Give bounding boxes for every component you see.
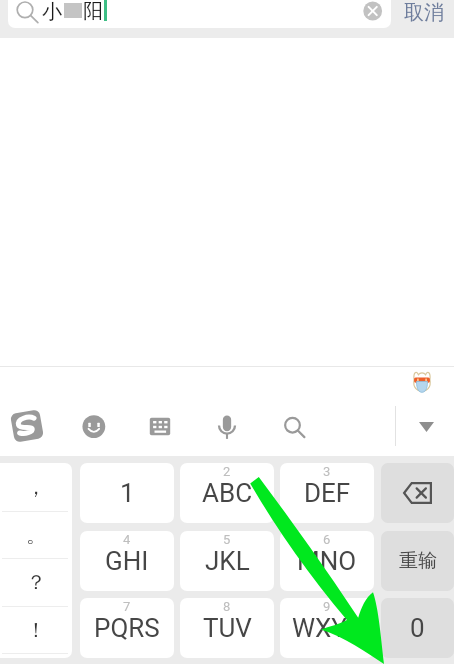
button[interactable]: WXYZ	[280, 598, 374, 658]
staticText: GHI	[105, 546, 149, 576]
staticText: ？	[26, 570, 46, 595]
staticText: 4	[123, 532, 131, 547]
staticText: TUV	[203, 613, 252, 643]
staticText: ，	[26, 475, 46, 500]
staticText: 取消	[404, 0, 444, 25]
staticText: 2	[223, 464, 231, 479]
staticText: 阳	[83, 0, 103, 21]
button[interactable]: Voice input	[217, 414, 237, 440]
button[interactable]: ？	[0, 558, 72, 606]
button[interactable]: ！	[0, 606, 72, 654]
button[interactable]: Keyboard layout	[149, 417, 171, 436]
button[interactable]: Emoji	[82, 415, 105, 438]
staticText: WXYZ	[292, 613, 363, 643]
staticText: 3	[323, 464, 331, 479]
staticText: 6	[323, 532, 331, 547]
staticText: ABC	[202, 478, 253, 508]
button[interactable]: 重输	[381, 531, 454, 591]
staticText: 5	[223, 532, 231, 547]
button[interactable]: 。	[0, 511, 72, 559]
button[interactable]	[381, 463, 454, 523]
button[interactable]: 0	[381, 598, 454, 658]
staticText: 小	[42, 0, 62, 21]
button[interactable]: 取消	[399, 0, 449, 26]
button[interactable]: ABC	[180, 463, 274, 523]
button[interactable]: JKL	[180, 531, 274, 591]
staticText: ！	[26, 618, 46, 643]
staticText: JKL	[205, 546, 250, 576]
button[interactable]: PQRS	[80, 598, 174, 658]
staticText: 7	[123, 599, 131, 614]
staticText: DEF	[304, 478, 351, 508]
staticText: 重输	[399, 549, 437, 573]
staticText: MNO	[297, 546, 357, 576]
button[interactable]: DEF	[280, 463, 374, 523]
button[interactable]: Search	[283, 415, 306, 438]
staticText: 8	[223, 599, 231, 614]
button[interactable]: Sogou input settings	[11, 410, 43, 442]
button[interactable]: GHI	[80, 531, 174, 591]
staticText: PQRS	[94, 613, 160, 643]
button[interactable]: MNO	[280, 531, 374, 591]
staticText: 1	[120, 478, 135, 508]
staticText: 。	[26, 523, 46, 548]
staticText: 9	[323, 599, 331, 614]
button[interactable]: Hide keyboard	[419, 422, 434, 432]
button[interactable]: TUV	[180, 598, 274, 658]
button[interactable]: ，	[0, 463, 72, 511]
button[interactable]: Skin mascot	[410, 369, 434, 393]
button[interactable]	[8, 0, 391, 28]
staticText: 0	[410, 613, 425, 643]
button[interactable]: 1	[80, 463, 174, 523]
button[interactable]: Clear text	[361, 0, 384, 23]
